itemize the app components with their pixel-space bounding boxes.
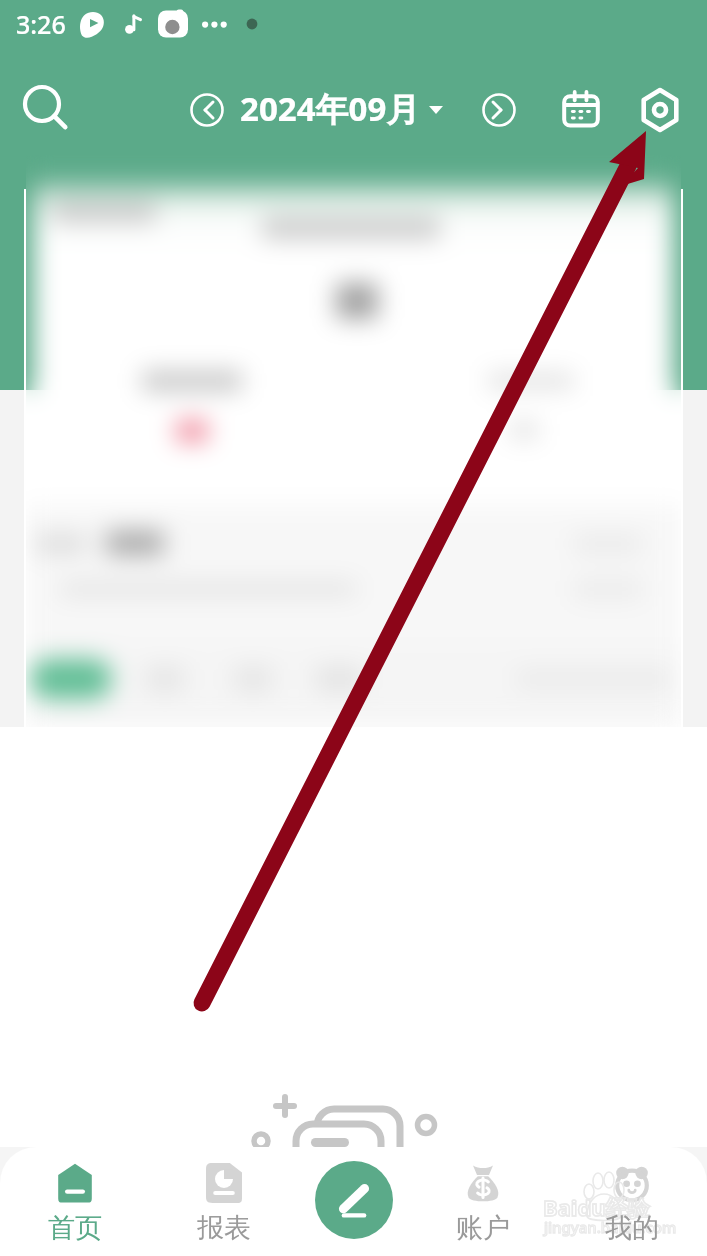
staticText: 3:26 — [16, 7, 66, 41]
staticText: 首页 — [48, 1208, 102, 1242]
button[interactable]: Previous month — [185, 88, 229, 132]
button[interactable]: 2024年09月 — [240, 86, 444, 131]
staticText: 我的 — [605, 1208, 659, 1242]
staticText: 首页 — [48, 1211, 102, 1245]
button[interactable]: Add record — [315, 1161, 393, 1239]
staticText: Baidu经验 — [543, 1192, 650, 1222]
button[interactable]: 首页 — [15, 1147, 135, 1256]
staticText: jingyan.baidu.com — [544, 1217, 677, 1237]
staticText: 我的 — [605, 1211, 659, 1245]
button[interactable]: Search — [16, 80, 72, 136]
button[interactable]: 账户 — [423, 1147, 543, 1256]
button[interactable]: Next month — [477, 88, 521, 132]
staticText: 账户 — [456, 1208, 510, 1242]
staticText: 报表 — [197, 1211, 251, 1245]
button[interactable]: Calendar — [553, 82, 609, 138]
button[interactable]: 报表 — [164, 1147, 284, 1256]
button[interactable]: Settings — [632, 82, 688, 138]
staticText: 2024年09月 — [240, 86, 420, 131]
button[interactable]: 我的 — [572, 1147, 692, 1256]
staticText: 账户 — [456, 1211, 510, 1245]
staticText: 报表 — [197, 1208, 251, 1242]
